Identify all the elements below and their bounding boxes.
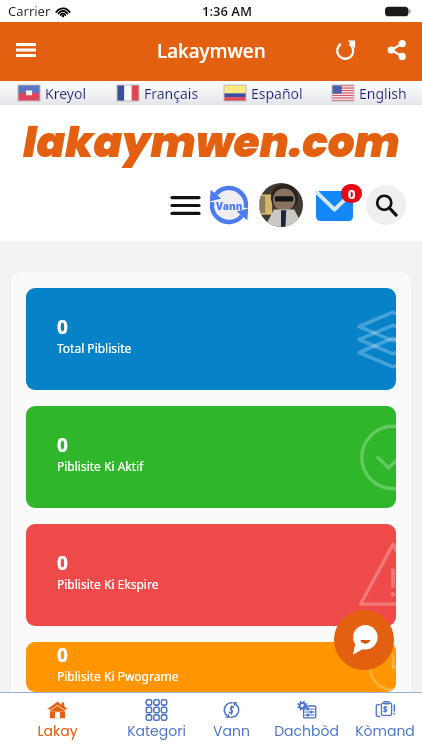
button[interactable]: Share [373, 26, 420, 73]
staticText: Français [144, 84, 199, 103]
button[interactable]: Profile [259, 183, 303, 227]
staticText: lakaymwen.com [23, 113, 400, 172]
button[interactable]: Dachbòd [265, 693, 348, 750]
staticText: Kòmand [355, 721, 415, 741]
button[interactable]: 0 [26, 642, 396, 692]
button[interactable]: Messages [310, 184, 362, 230]
staticText: 0 [348, 185, 356, 203]
staticText: Piblisite Ki Pwograme [57, 668, 179, 684]
button[interactable]: Kòmand [348, 693, 422, 750]
button[interactable]: Menu [165, 185, 205, 225]
staticText: Lakaymwen [157, 38, 266, 64]
staticText: Kategori [127, 721, 186, 741]
staticText: Lakay [37, 721, 78, 741]
staticText: 0 [57, 642, 68, 668]
staticText: Vann [216, 199, 243, 213]
staticText: Total Piblisite [57, 340, 132, 356]
staticText: 1:36 AM [202, 2, 253, 20]
staticText: 0 [57, 432, 68, 458]
button[interactable]: Vann [204, 180, 254, 230]
button[interactable]: Open navigation menu [2, 26, 49, 73]
staticText: English [359, 84, 407, 103]
button[interactable]: 0 [26, 406, 396, 508]
button[interactable]: Lakay [0, 693, 115, 750]
button[interactable]: Kategori [115, 693, 198, 750]
button[interactable]: Refresh [322, 26, 369, 73]
staticText: Dachbòd [274, 721, 339, 741]
staticText: Piblisite Ki Ekspire [57, 576, 159, 592]
button[interactable]: Open chat [334, 610, 394, 670]
button[interactable]: Search [366, 185, 406, 225]
staticText: Piblisite Ki Aktif [57, 458, 144, 474]
button[interactable]: Vann [198, 693, 265, 750]
button[interactable]: Kreyol [0, 81, 105, 105]
button[interactable]: English [316, 81, 422, 105]
button[interactable]: Español [210, 81, 316, 105]
staticText: Vann [213, 721, 250, 741]
staticText: Español [251, 84, 303, 103]
staticText: Carrier [8, 2, 51, 20]
button[interactable]: 0 [26, 524, 396, 626]
staticText: 0 [57, 314, 68, 340]
staticText: 0 [57, 550, 68, 576]
staticText: Kreyol [45, 84, 87, 103]
button[interactable]: 0 [26, 288, 396, 390]
button[interactable]: Français [105, 81, 210, 105]
